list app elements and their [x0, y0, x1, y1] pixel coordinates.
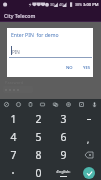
staticText: 5 — [35, 130, 42, 144]
staticText: 3:00 PM — [83, 2, 99, 8]
button[interactable]: Delete — [76, 146, 101, 164]
button[interactable]: 0 — [26, 164, 51, 180]
button[interactable]: 4 — [0, 128, 26, 146]
button[interactable]: Settings — [62, 99, 75, 110]
button[interactable]: Space — [51, 164, 76, 180]
staticText: PIN — [12, 49, 20, 55]
staticText: 6 — [60, 130, 67, 144]
staticText: YES — [83, 65, 91, 71]
button[interactable]: Text editing — [75, 99, 88, 110]
button[interactable]: Comma — [76, 128, 101, 146]
button[interactable]: 2 — [26, 110, 51, 128]
button[interactable]: Dash — [76, 110, 101, 128]
staticText: Enter PIN for demo — [11, 32, 59, 39]
button[interactable]: Clipboard — [24, 99, 36, 110]
staticText: 7 — [10, 148, 17, 162]
button[interactable]: Emoji — [12, 99, 24, 110]
button[interactable]: 6 — [51, 128, 76, 146]
button[interactable]: Stickers — [0, 99, 12, 110]
button[interactable]: 1 — [0, 110, 26, 128]
button[interactable]: 3 — [51, 110, 76, 128]
staticText: 0 — [35, 166, 42, 180]
staticText: 3 — [60, 112, 67, 126]
staticText: 3G — [50, 2, 55, 7]
staticText: 4G — [59, 2, 64, 7]
button[interactable]: 5 — [26, 128, 51, 146]
staticText: 38% — [75, 2, 83, 7]
button[interactable]: Translate — [49, 99, 62, 110]
button[interactable]: NO — [63, 62, 76, 74]
button[interactable]: 7 — [0, 146, 26, 164]
button[interactable]: 9 — [51, 146, 76, 164]
staticText: 4 — [10, 130, 17, 144]
button[interactable]: GIF — [36, 99, 49, 110]
button[interactable]: Voice input — [88, 99, 101, 110]
staticText: 1 — [10, 112, 17, 126]
button[interactable]: Period — [0, 164, 26, 180]
staticText: NO — [66, 65, 73, 71]
staticText: 2 — [35, 112, 42, 126]
staticText: City Telecom — [4, 12, 36, 19]
button[interactable]: Enter — [76, 164, 101, 180]
button[interactable]: 8 — [26, 146, 51, 164]
staticText: 8 — [35, 148, 42, 162]
staticText: , — [87, 134, 90, 145]
button[interactable]: YES — [80, 62, 94, 74]
staticText: ‹English› — [56, 169, 71, 174]
staticText: 9 — [60, 148, 67, 162]
